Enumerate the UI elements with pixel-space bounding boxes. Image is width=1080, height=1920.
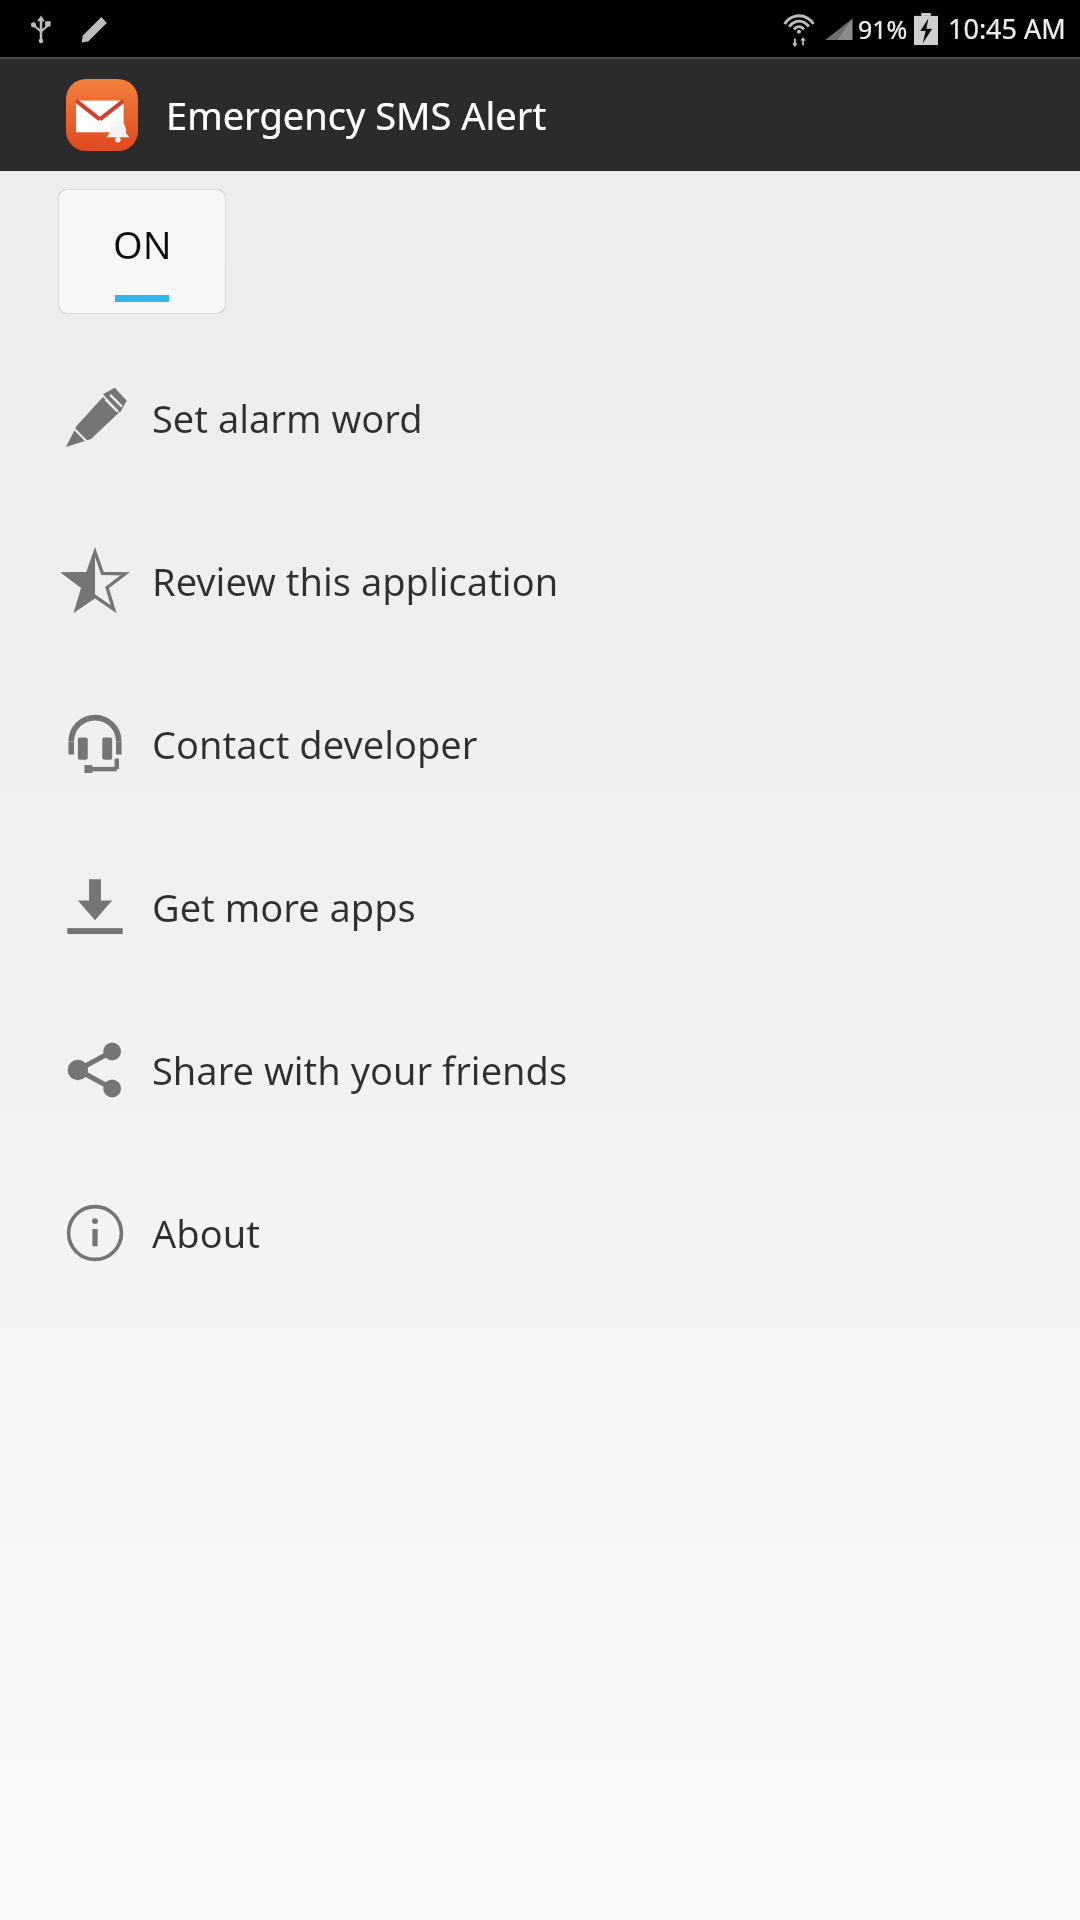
- staticText: Share with your friends: [152, 1044, 568, 1096]
- staticText: Contact developer: [152, 718, 478, 770]
- staticText: 91%: [858, 12, 908, 46]
- button[interactable]: Contact developer: [0, 662, 1080, 825]
- button[interactable]: Get more apps: [0, 825, 1080, 988]
- staticText: 10:45 AM: [948, 10, 1066, 47]
- button[interactable]: About: [0, 1151, 1080, 1314]
- staticText: Get more apps: [152, 881, 416, 933]
- button[interactable]: ON: [58, 189, 226, 314]
- staticText: Review this application: [152, 555, 559, 607]
- staticText: ON: [113, 218, 172, 270]
- staticText: Emergency SMS Alert: [166, 89, 547, 141]
- button[interactable]: Share with your friends: [0, 988, 1080, 1151]
- button[interactable]: Review this application: [0, 499, 1080, 662]
- staticText: About: [152, 1207, 260, 1259]
- staticText: Set alarm word: [152, 392, 423, 444]
- button[interactable]: Set alarm word: [0, 336, 1080, 499]
